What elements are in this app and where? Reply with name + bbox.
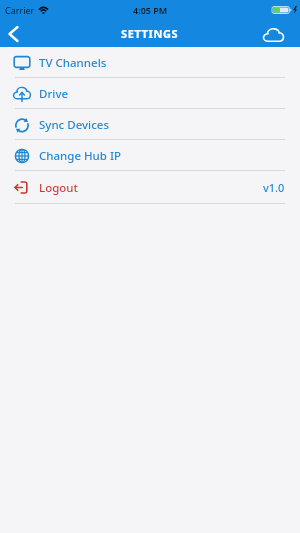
button[interactable]: Drive — [0, 78, 300, 109]
button[interactable] — [0, 20, 26, 47]
staticText: Logout — [39, 180, 78, 196]
staticText: TV Channels — [39, 55, 107, 71]
button[interactable]: Change Hub IP — [0, 140, 300, 171]
button[interactable]: Logout — [0, 171, 300, 204]
staticText: Drive — [39, 86, 69, 102]
staticText: 4:05 PM — [133, 4, 168, 16]
staticText: v1.0 — [263, 180, 285, 195]
staticText: Carrier — [5, 4, 35, 16]
button[interactable]: TV Channels — [0, 47, 300, 78]
staticText: Sync Devices — [39, 117, 110, 133]
button[interactable]: Sync Devices — [0, 109, 300, 140]
staticText: SETTINGS — [121, 26, 179, 41]
staticText: Change Hub IP — [39, 148, 122, 164]
button[interactable] — [258, 20, 300, 47]
